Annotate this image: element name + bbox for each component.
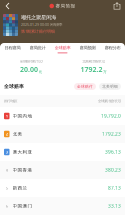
staticText: 4 [6,167,8,173]
staticText: 全球赔率 [54,45,70,50]
button[interactable]: 6 [0,197,125,215]
staticText: 全球累计赔付(元) [98,99,121,103]
staticText: 全球赔付累计(元) [20,59,43,64]
staticText: 赛局统计 [29,45,45,50]
staticText: 全球赔率 [4,83,24,89]
button[interactable]: Share [111,0,123,12]
button[interactable]: 赛局预测 [75,43,100,55]
staticText: 19,792.0 [101,113,121,119]
staticText: 6 [6,203,8,209]
staticText: 380.23 [105,167,121,173]
button[interactable]: 北美明细 [99,83,121,90]
staticText: 87.13 [108,185,121,191]
staticText: 嘟托之聚星闲海 [21,14,56,21]
staticText: 新西兰 [12,185,27,191]
button[interactable]: 5 [0,179,125,197]
staticText: 2 [6,131,8,137]
staticText: 中国澳门 [12,203,32,209]
staticText: 1 [6,113,8,119]
staticText: 赛局简报 [55,3,75,9]
staticText: 北美 [12,131,22,137]
button[interactable]: 赛程分布 [100,43,125,55]
staticText: 中国香港 [12,167,32,173]
button[interactable]: 全球赔率 [50,43,75,55]
button[interactable]: 全球赔付 [74,83,96,90]
button[interactable]: 3 [0,143,125,161]
staticText: 赛程分布 [104,45,120,50]
staticText: 全球赔付 [77,84,93,89]
staticText: 万 [103,69,107,74]
button[interactable]: Back [2,0,14,12]
button[interactable]: 4 [0,161,125,179]
staticText: 元 [38,69,42,74]
staticText: 2025-01-29 00:00 闲海赛季 [21,22,62,27]
staticText: 排行/地区 [4,99,17,103]
staticText: 1792.23 [102,131,121,137]
staticText: 中国内地 [12,113,32,119]
staticText: 1792.2 [80,65,102,74]
staticText: 日程赛局 [4,45,20,50]
staticText: 33.13 [108,203,121,209]
staticText: 5 [6,185,8,191]
staticText: 赛局预测 [79,45,95,50]
staticText: 北美明细 [102,84,118,89]
button[interactable]: 日程赛局 [0,43,25,55]
staticText: 第1期累计赔付明细 [21,28,55,34]
staticText: 北美累计赔付(元) [82,59,105,64]
button[interactable]: 2 [0,125,125,143]
button[interactable]: 1 [0,107,125,125]
staticText: 3 [6,149,8,155]
staticText: 澳大利亚 [12,149,32,155]
button[interactable]: 赛局统计 [25,43,50,55]
staticText: 396.13 [105,149,121,155]
staticText: 20.00 [20,65,38,74]
